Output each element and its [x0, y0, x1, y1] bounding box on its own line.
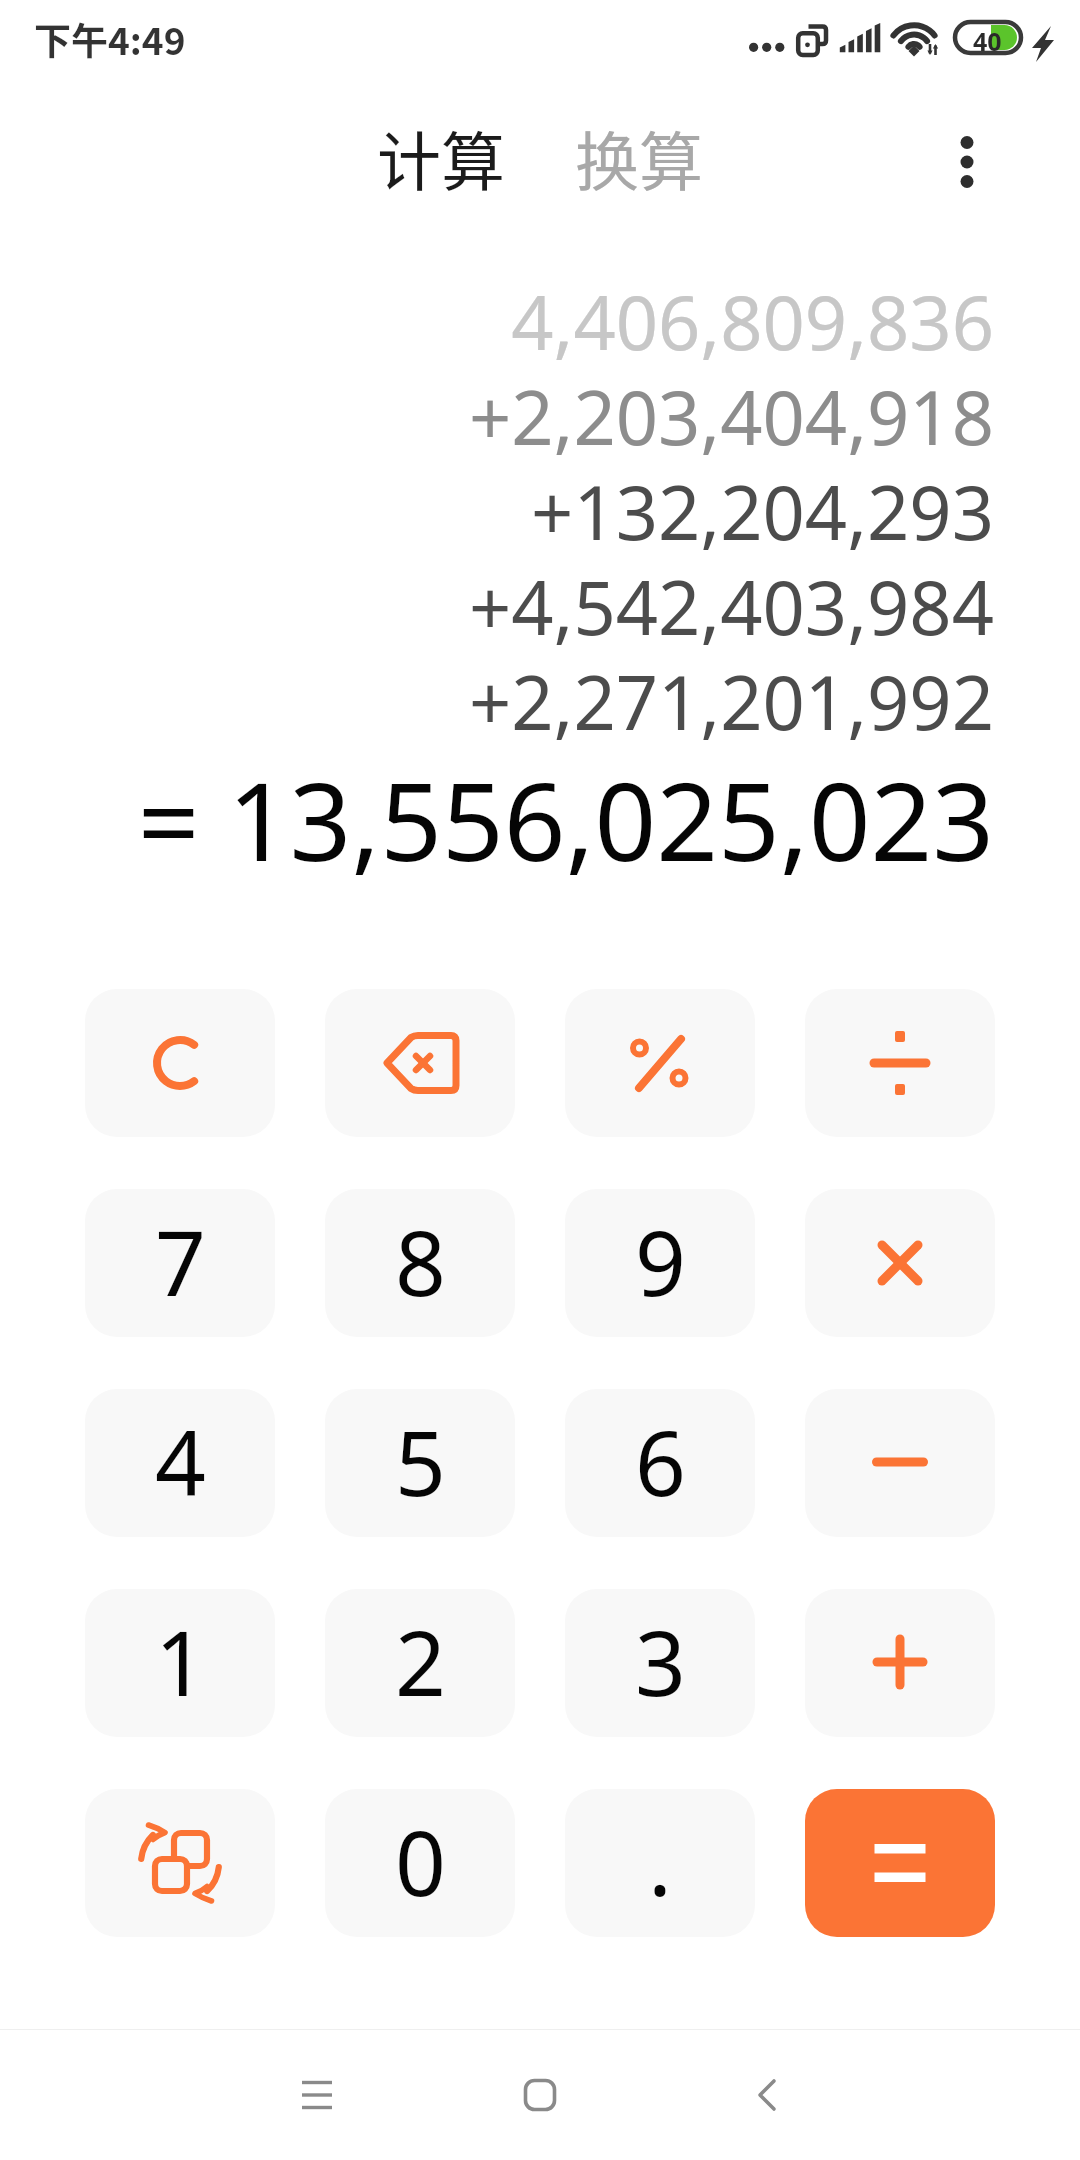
button[interactable]: Percent — [565, 989, 755, 1137]
button[interactable]: Clear — [85, 989, 275, 1137]
staticText: = 13,556,025,023 — [137, 746, 994, 893]
button[interactable]: 1 — [85, 1589, 275, 1737]
staticText: 6 — [635, 1401, 686, 1522]
button[interactable]: 5 — [325, 1389, 515, 1537]
staticText: 换算 — [575, 111, 703, 204]
staticText: 4,406,809,836 — [511, 271, 994, 372]
button[interactable]: Minus — [805, 1389, 995, 1537]
button[interactable]: 换算 — [555, 97, 723, 218]
staticText: 计算 — [377, 111, 505, 204]
staticText: 7 — [155, 1201, 206, 1322]
button[interactable]: 9 — [565, 1189, 755, 1337]
button[interactable]: 3 — [565, 1589, 755, 1737]
staticText: +2,203,404,918 — [468, 366, 994, 467]
button[interactable]: 7 — [85, 1189, 275, 1337]
staticText: 3 — [635, 1601, 686, 1722]
button[interactable]: 0 — [325, 1789, 515, 1937]
button[interactable]: Recents — [257, 2035, 377, 2155]
button[interactable]: 6 — [565, 1389, 755, 1537]
staticText: 9 — [635, 1201, 686, 1322]
staticText: 1 — [155, 1601, 206, 1722]
staticText: . — [648, 1801, 672, 1922]
button[interactable]: Equals — [805, 1789, 995, 1937]
button[interactable]: 4 — [85, 1389, 275, 1537]
button[interactable]: Multiply — [805, 1189, 995, 1337]
staticText: 40 — [973, 24, 1002, 58]
staticText: +132,204,293 — [531, 461, 994, 562]
button[interactable]: 计算 — [357, 97, 525, 218]
staticText: 0 — [395, 1801, 446, 1922]
button[interactable]: Divide — [805, 989, 995, 1137]
staticText: 4 — [155, 1401, 206, 1522]
staticText: +4,542,403,984 — [468, 556, 994, 657]
button[interactable]: More options — [912, 107, 1022, 217]
staticText: 下午4:49 — [34, 12, 186, 66]
button[interactable]: Convert — [85, 1789, 275, 1937]
button[interactable]: Home — [480, 2035, 600, 2155]
button[interactable]: Back — [707, 2035, 827, 2155]
button[interactable]: Plus — [805, 1589, 995, 1737]
button[interactable]: 8 — [325, 1189, 515, 1337]
staticText: 8 — [395, 1201, 446, 1322]
staticText: 5 — [395, 1401, 446, 1522]
staticText: 2 — [395, 1601, 446, 1722]
button[interactable]: Delete — [325, 989, 515, 1137]
staticText: +2,271,201,992 — [468, 651, 994, 752]
button[interactable]: . — [565, 1789, 755, 1937]
button[interactable]: 2 — [325, 1589, 515, 1737]
